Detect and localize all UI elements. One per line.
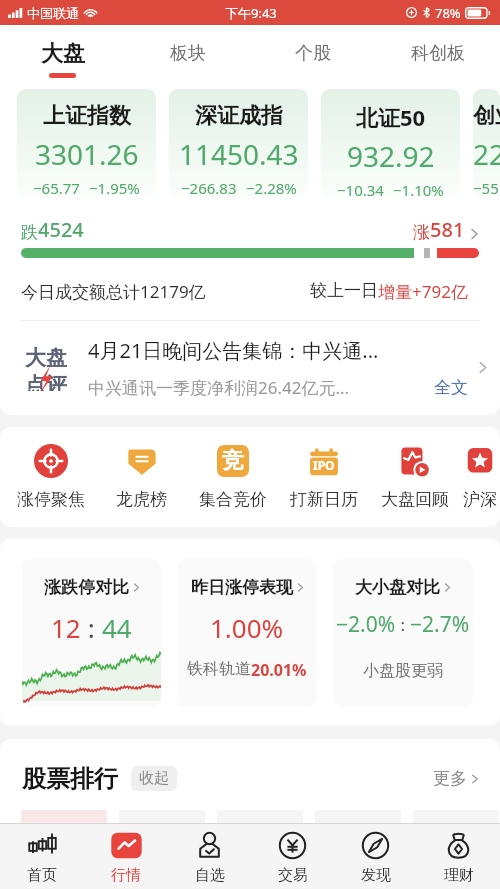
button[interactable]: 大小盘对比 [333,559,473,707]
staticText: 首页 [27,866,57,885]
staticText: 竞 [222,447,244,475]
staticText: 行情 [111,866,141,885]
staticText: : [81,610,102,645]
staticText: : [396,613,410,636]
button[interactable]: 收起 [131,766,177,791]
staticText: 932.92 [347,137,435,175]
staticText: 收起 [139,769,169,788]
staticText: 涨停聚焦 [17,489,85,510]
staticText: 创业板指 [473,102,500,130]
button[interactable]: 涨跌停对比 [22,559,161,707]
staticText: 打新日历 [290,489,358,510]
staticText: 11450.43 [179,135,299,173]
button[interactable]: 龙虎榜 [96,427,187,527]
staticText: 集合竞价 [199,489,267,510]
staticText: −10.34 [337,180,384,197]
button[interactable]: IPO [278,427,369,527]
staticText: 12 [51,610,81,645]
staticText: 交易 [278,866,308,885]
button[interactable]: 涨停聚焦 [5,427,96,527]
button[interactable]: 发现 [334,824,417,889]
button[interactable]: 科创板 [375,25,500,80]
staticText: −266.83 [181,178,237,197]
staticText: 涨 [413,222,430,243]
staticText: 20.01% [251,659,307,681]
staticText: 涨跌停对比 [44,577,129,598]
staticText: 中兴通讯一季度净利润26.42亿元... [88,376,350,399]
button[interactable]: 竞 [187,427,278,527]
staticText: −1.95% [89,178,140,197]
staticText: 大盘回顾 [381,489,449,510]
staticText: 大盘 [25,345,67,371]
staticText: 铁科轨道 [187,659,251,679]
staticText: 上证指数 [43,102,131,130]
staticText: IPO [313,457,335,473]
staticText: 大小盘对比 [355,577,440,598]
button[interactable]: 板块 [125,25,250,80]
staticText: 发现 [361,866,391,885]
staticText: 4月21日晚间公告集锦：中兴通... [88,337,379,364]
staticText: 全文 [434,377,468,398]
staticText: −65.77 [33,178,80,197]
staticText: 昨日涨停表现 [191,577,293,598]
staticText: 点评 [25,372,67,391]
staticText: 个股 [295,42,331,65]
staticText: 自选 [195,866,225,885]
staticText: −1.10% [393,180,444,197]
staticText: 78% [435,4,461,22]
button[interactable]: 大盘 [18,321,488,414]
staticText: −2.28% [246,178,297,197]
staticText: 小盘股更弱 [363,661,443,681]
staticText: 跌 [21,222,38,243]
staticText: 1.00% [210,610,284,645]
button[interactable]: 创业板指 [473,89,500,197]
button[interactable]: 理财 [417,824,500,889]
staticText: 科创板 [411,42,465,65]
staticText: 沪深 [463,489,497,510]
staticText: 3301.26 [35,135,139,173]
staticText: −2.0% [336,610,396,639]
staticText: 理财 [444,866,474,885]
staticText: 股票排行 [22,764,118,794]
button[interactable]: 自选 [168,824,251,889]
staticText: 4524 [38,216,84,243]
button[interactable]: 沪深 [460,427,500,527]
button[interactable]: 跌 [21,216,479,258]
button[interactable]: 交易 [251,824,334,889]
button[interactable]: 大盘回顾 [369,427,460,527]
button[interactable]: 深证成指 [169,89,308,197]
button[interactable]: 个股 [250,25,375,80]
staticText: −2.7% [410,610,470,639]
button[interactable]: 昨日涨停表现 [177,559,317,707]
staticText: 大盘 [41,40,85,68]
staticText: 2206.72 [473,135,500,173]
staticText: 板块 [170,42,206,65]
button[interactable]: 上证指数 [17,89,156,197]
staticText: 较上一日 [310,280,378,301]
staticText: 龙虎榜 [116,489,167,510]
staticText: −55.40 [473,178,500,197]
staticText: 增量+792亿 [378,280,468,303]
staticText: 更多 [433,768,467,789]
staticText: 北证50 [356,102,426,132]
button[interactable]: 大盘 [0,25,125,80]
button[interactable]: 更多 [433,768,479,789]
staticText: 581 [430,216,465,243]
staticText: 今日成交额总计12179亿 [21,280,206,303]
staticText: 深证成指 [195,102,283,130]
button[interactable]: 北证50 [321,89,460,197]
staticText: 下午9:43 [225,4,277,22]
staticText: 中国联通 [27,5,79,21]
staticText: 44 [102,610,132,645]
button[interactable]: 首页 [0,824,84,889]
button[interactable]: 行情 [84,824,168,889]
